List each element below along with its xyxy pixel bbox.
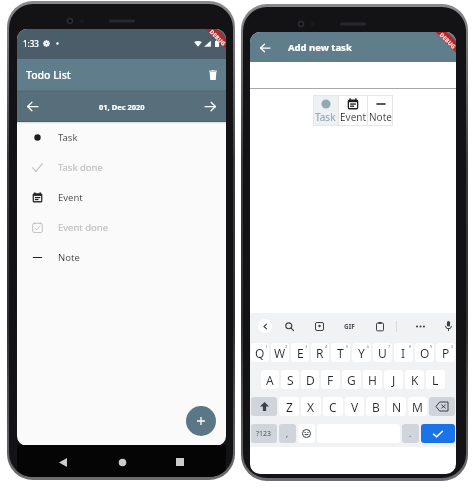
button[interactable]: T <box>331 343 350 362</box>
staticText: K <box>411 372 419 388</box>
button[interactable]: Home <box>110 450 134 474</box>
staticText: Note <box>369 110 392 124</box>
staticText: S <box>287 372 294 388</box>
staticText: W <box>274 345 286 361</box>
button[interactable]: GIF <box>342 319 356 333</box>
button[interactable]: ?123 <box>251 424 277 443</box>
button[interactable]: B <box>366 397 385 416</box>
button[interactable]: P <box>436 343 455 362</box>
staticText: Event <box>340 110 367 124</box>
staticText: F <box>327 372 334 388</box>
button[interactable]: Backspace <box>429 397 455 416</box>
staticText: Task <box>58 131 78 144</box>
staticText: DEBUG <box>208 29 226 47</box>
button[interactable]: Note <box>17 242 226 272</box>
button[interactable]: Delete all <box>203 65 223 85</box>
staticText: I <box>401 345 406 361</box>
button[interactable]: Expand toolbar <box>258 319 272 333</box>
button[interactable]: G <box>342 370 361 389</box>
button[interactable]: Z <box>279 397 299 416</box>
button[interactable]: Q <box>251 343 269 362</box>
button[interactable]: V <box>345 397 364 416</box>
button[interactable]: Recent apps <box>168 450 192 474</box>
staticText: , <box>286 428 289 439</box>
button[interactable]: J <box>384 370 403 389</box>
staticText: J <box>392 372 396 388</box>
button[interactable]: Event <box>339 95 367 126</box>
staticText: E <box>297 345 304 361</box>
staticText: Add new task <box>288 41 352 54</box>
button[interactable]: S <box>281 370 299 389</box>
staticText: A <box>266 372 274 388</box>
button[interactable]: Next day <box>199 95 222 118</box>
staticText: P <box>442 345 450 361</box>
button[interactable]: I <box>394 343 413 362</box>
button[interactable]: Stickers <box>312 319 326 333</box>
button[interactable]: Clipboard <box>373 319 387 333</box>
staticText: O <box>420 345 430 361</box>
button[interactable]: Event <box>17 182 226 212</box>
button[interactable]: Done <box>421 424 455 443</box>
staticText: Note <box>58 251 80 264</box>
button[interactable]: Note <box>368 95 393 126</box>
button[interactable]: Task done <box>17 152 226 182</box>
staticText: 9 <box>430 344 433 349</box>
button[interactable]: R <box>311 343 329 362</box>
button[interactable]: D <box>301 370 319 389</box>
staticText: T <box>337 345 344 361</box>
staticText: D <box>306 372 315 388</box>
staticText: U <box>378 345 387 361</box>
staticText: X <box>307 399 315 415</box>
button[interactable]: Event done <box>17 212 226 242</box>
button[interactable]: Add task <box>186 406 216 436</box>
button[interactable]: Shift <box>251 397 277 416</box>
staticText: GIF <box>344 322 355 331</box>
staticText: 6 <box>367 344 370 349</box>
staticText: N <box>392 399 402 415</box>
staticText: Task <box>315 110 336 124</box>
staticText: . <box>409 428 412 439</box>
button[interactable]: Task <box>17 122 226 152</box>
button[interactable]: F <box>321 370 340 389</box>
button[interactable]: . <box>402 424 419 443</box>
button[interactable]: M <box>408 397 427 416</box>
button[interactable]: , <box>279 424 296 443</box>
staticText: 8 <box>409 344 412 349</box>
button[interactable]: Back <box>51 450 75 474</box>
staticText: 1 <box>265 344 268 349</box>
staticText: C <box>329 399 337 415</box>
staticText: G <box>347 372 356 388</box>
button[interactable]: E <box>291 343 309 362</box>
staticText: Event <box>58 191 83 204</box>
staticText: 7 <box>388 344 391 349</box>
staticText: Z <box>286 399 293 415</box>
staticText: H <box>368 372 377 388</box>
button[interactable]: Previous day <box>21 95 44 118</box>
button[interactable]: N <box>387 397 406 416</box>
button[interactable]: Voice input <box>441 319 455 333</box>
staticText: V <box>351 399 359 415</box>
button[interactable]: L <box>426 370 445 389</box>
staticText: Todo List <box>26 68 71 82</box>
button[interactable]: A <box>261 370 279 389</box>
button[interactable]: O <box>415 343 434 362</box>
button[interactable]: H <box>363 370 382 389</box>
button[interactable]: Y <box>352 343 371 362</box>
staticText: L <box>432 372 439 388</box>
button[interactable]: Back <box>253 36 276 59</box>
staticText: Y <box>358 345 365 361</box>
button[interactable]: K <box>405 370 424 389</box>
staticText: Task done <box>58 161 103 174</box>
button[interactable]: Task <box>313 95 338 126</box>
button[interactable]: X <box>301 397 321 416</box>
button[interactable]: C <box>323 397 343 416</box>
button[interactable]: More options <box>413 319 427 333</box>
button[interactable]: Emoji <box>298 424 315 443</box>
staticText: 4 <box>325 344 328 349</box>
staticText: 0 <box>451 344 454 349</box>
staticText: ?123 <box>256 429 272 439</box>
button[interactable]: W <box>271 343 289 362</box>
button[interactable]: Search <box>282 319 296 333</box>
button[interactable]: U <box>373 343 392 362</box>
